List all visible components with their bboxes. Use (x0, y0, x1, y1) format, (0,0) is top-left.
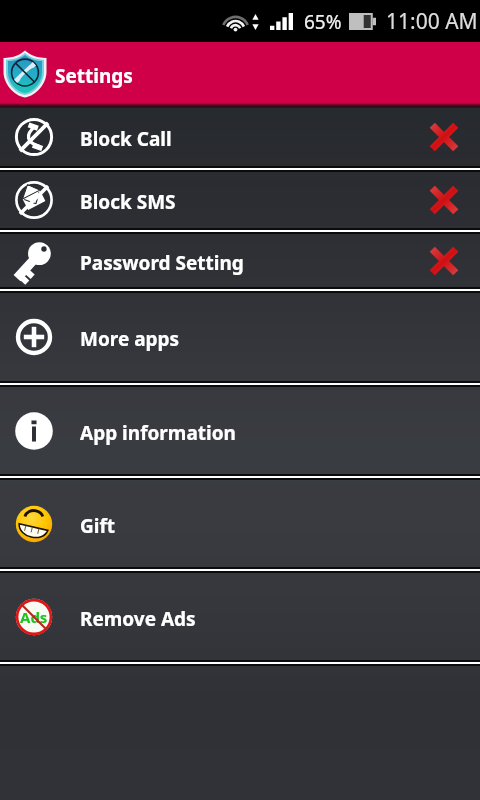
staticText: App information (80, 420, 236, 446)
button[interactable]: App information (0, 387, 480, 474)
staticText: Block Call (80, 126, 172, 152)
button[interactable]: Password Setting (0, 234, 480, 287)
staticText: More apps (80, 326, 180, 352)
button[interactable]: Block SMS (0, 172, 480, 228)
button[interactable]: Ads (0, 573, 480, 660)
staticText: Settings (55, 63, 133, 89)
button[interactable]: More apps (0, 293, 480, 381)
button[interactable]: Block Call (0, 108, 480, 166)
staticText: Ads (20, 607, 48, 627)
staticText: Block SMS (80, 189, 176, 215)
staticText: 11:00 AM (386, 7, 478, 36)
staticText: 65% (304, 9, 342, 35)
staticText: Remove Ads (80, 606, 196, 632)
staticText: Gift (80, 513, 116, 539)
button[interactable]: Gift (0, 480, 480, 567)
staticText: Password Setting (80, 250, 244, 276)
